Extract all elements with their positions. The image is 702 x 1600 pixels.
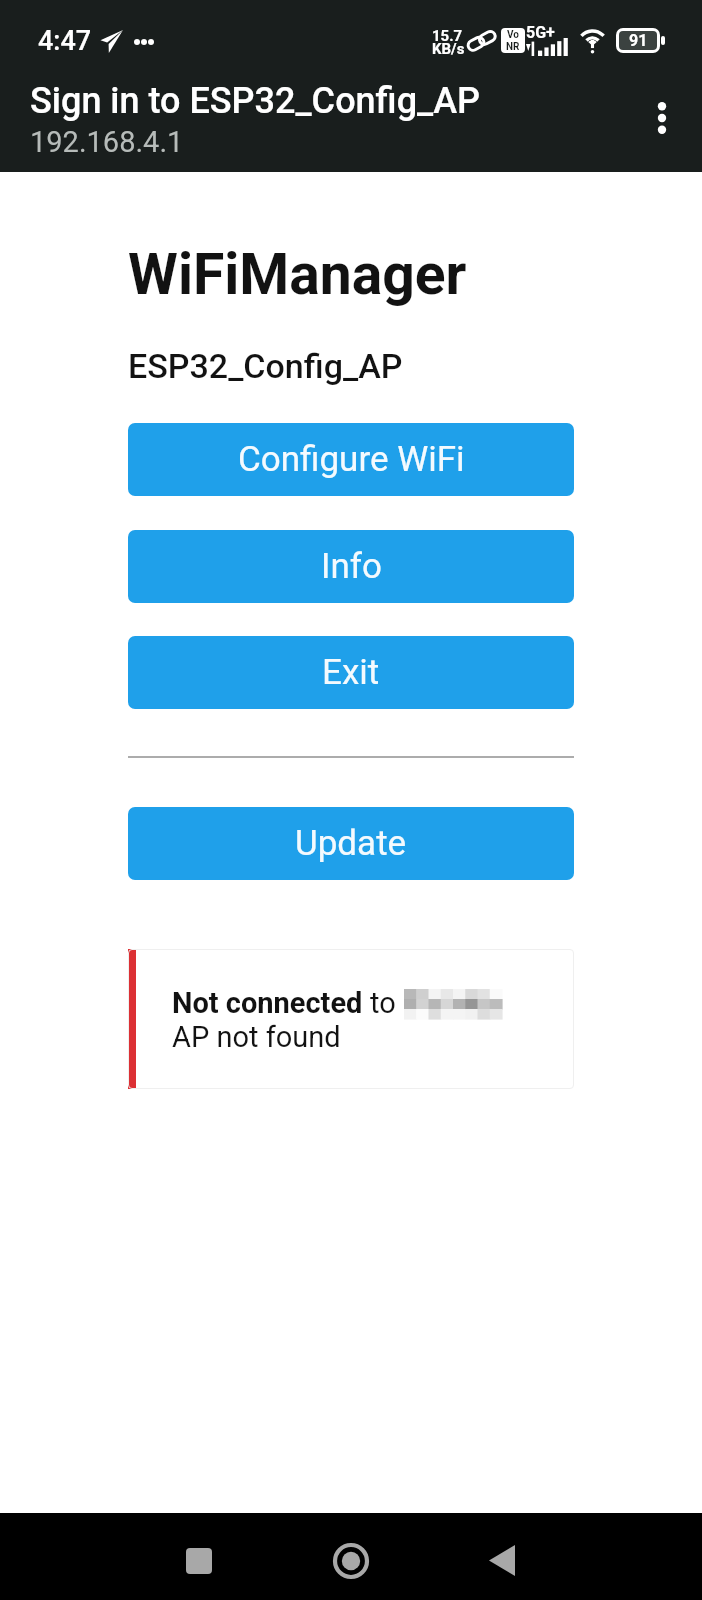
staticText: to (370, 986, 396, 1020)
staticText: 15.7 (432, 27, 463, 45)
staticText: Exit (322, 652, 380, 693)
button[interactable]: Back (459, 1518, 547, 1600)
staticText: 5G+ (526, 23, 555, 42)
staticText: Sign in to ESP32_Config_AP (30, 80, 481, 122)
staticText: 4:47 (38, 25, 92, 57)
staticText: Vo (507, 29, 519, 41)
button[interactable]: Info (128, 530, 574, 603)
button[interactable]: Recent apps (155, 1518, 243, 1600)
staticText: Not connected (172, 986, 370, 1020)
staticText: 192.168.4.1 (30, 125, 184, 159)
staticText: 91 (629, 31, 648, 50)
staticText: Info (321, 546, 382, 587)
button[interactable]: Configure WiFi (128, 423, 574, 496)
staticText: NR (506, 41, 520, 53)
button[interactable]: Home (307, 1518, 395, 1600)
staticText: AP not found (172, 1020, 341, 1054)
staticText: Configure WiFi (238, 439, 465, 480)
button[interactable]: Update (128, 807, 574, 880)
staticText: WiFiManager (128, 241, 467, 308)
staticText: Update (295, 823, 407, 864)
button[interactable]: Exit (128, 636, 574, 709)
staticText: KB/s (432, 40, 465, 58)
button[interactable]: More options (634, 90, 690, 146)
staticText: ESP32_Config_AP (128, 346, 403, 386)
